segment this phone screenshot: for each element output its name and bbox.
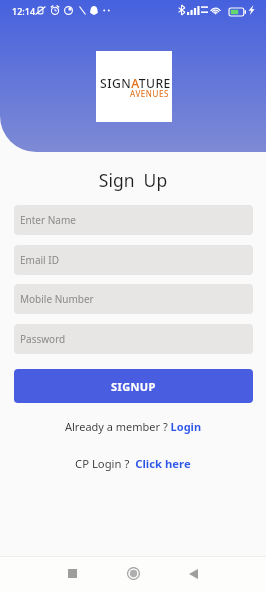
staticText: CP Login ? Click here (75, 456, 191, 471)
button[interactable]: Email ID (14, 245, 253, 275)
staticText: SIGNATURE (100, 75, 171, 92)
button[interactable]: Already a member ? Login (0, 416, 266, 436)
button[interactable]: Back (171, 557, 215, 592)
staticText: SIGNUP (111, 379, 156, 394)
staticText: Sign Up (0, 168, 266, 192)
button[interactable]: CP Login ? Click here (0, 453, 266, 473)
staticText: Already a member ? Login (65, 419, 202, 434)
button[interactable]: Recent apps (50, 557, 94, 592)
staticText: Mobile Number (20, 292, 94, 306)
button[interactable]: Enter Name (14, 205, 253, 235)
staticText: Password (20, 332, 66, 346)
staticText: AVENUES (130, 88, 170, 99)
staticText: Email ID (20, 253, 59, 267)
button[interactable]: SIGNUP (14, 369, 253, 403)
staticText: 12:14 (12, 5, 36, 17)
staticText: Enter Name (20, 213, 76, 227)
button[interactable]: Password (14, 324, 253, 354)
button[interactable]: Mobile Number (14, 284, 253, 314)
button[interactable]: Home (111, 557, 155, 592)
